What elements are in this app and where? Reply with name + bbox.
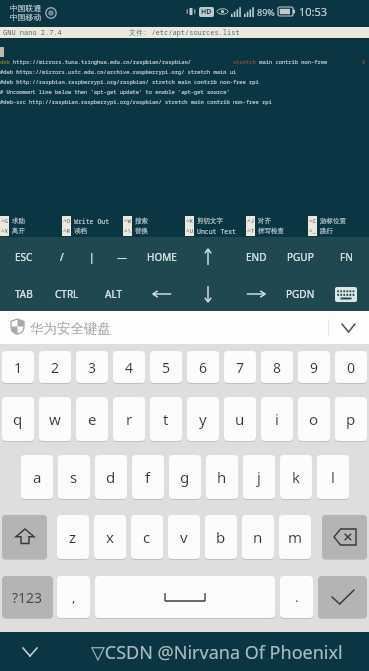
button[interactable]: 1 <box>2 351 34 383</box>
button[interactable]: b <box>205 515 237 559</box>
button[interactable]: l <box>317 455 349 499</box>
button[interactable]: i <box>261 397 293 441</box>
staticText: GNU nano 2.7.4 <box>3 28 62 38</box>
button[interactable]: ESC <box>2 244 46 270</box>
staticText: 2 <box>51 358 60 377</box>
staticText: ^C <box>309 217 317 225</box>
button[interactable]: END <box>234 244 278 270</box>
button[interactable]: ?123 <box>2 576 53 618</box>
button[interactable]: / <box>40 244 84 270</box>
button[interactable]: Collapse keyboard <box>334 316 362 340</box>
staticText: #deb https://mirrors.ustc.edu.cn/archive… <box>0 68 237 75</box>
button[interactable]: Enter <box>318 576 367 618</box>
staticText: 8 <box>273 358 282 377</box>
button[interactable]: ALT <box>91 281 135 307</box>
staticText: 离开 <box>12 227 25 235</box>
button[interactable]: 5 <box>150 351 182 383</box>
button[interactable]: v <box>168 515 200 559</box>
button[interactable]: ^O <box>62 216 124 237</box>
staticText: Uncut Text <box>197 227 237 236</box>
staticText: s <box>70 467 78 487</box>
staticText: 跳行 <box>320 227 333 235</box>
staticText: #deb-src http://raspbian.raspberrypi.org… <box>0 98 272 105</box>
staticText: t <box>163 409 169 429</box>
staticText: q <box>13 409 23 429</box>
staticText: 10:53 <box>299 4 328 19</box>
button[interactable]: Arrow down <box>186 281 230 307</box>
staticText: 6 <box>199 358 208 377</box>
button[interactable]: — <box>100 244 144 270</box>
staticText: ^K <box>186 217 194 225</box>
button[interactable]: q <box>2 397 34 441</box>
staticText: Write Out <box>74 217 110 226</box>
staticText: p <box>346 409 356 429</box>
button[interactable]: ^C <box>308 216 369 237</box>
button[interactable]: s <box>58 455 90 499</box>
button[interactable]: Hide keyboard <box>14 640 46 664</box>
button[interactable]: x <box>94 515 126 559</box>
button[interactable]: 2 <box>39 351 71 383</box>
button[interactable]: Shift <box>2 515 47 559</box>
button[interactable]: c <box>131 515 163 559</box>
button[interactable]: j <box>243 455 275 499</box>
button[interactable]: k <box>280 455 312 499</box>
button[interactable]: 7 <box>224 351 256 383</box>
button[interactable]: Backspace <box>322 515 367 559</box>
button[interactable]: Arrow right <box>234 281 278 307</box>
button[interactable]: ^K <box>185 216 247 237</box>
staticText: $ <box>362 58 366 65</box>
button[interactable]: 0 <box>335 351 367 383</box>
button[interactable]: PGDN <box>278 281 322 307</box>
button[interactable]: . <box>280 576 313 618</box>
button[interactable]: g <box>169 455 201 499</box>
button[interactable]: ^W <box>123 216 185 237</box>
staticText: | <box>89 250 95 264</box>
button[interactable]: z <box>57 515 89 559</box>
staticText: d <box>106 467 116 487</box>
button[interactable]: a <box>21 455 53 499</box>
button[interactable]: t <box>150 397 182 441</box>
button[interactable]: PGUP <box>278 244 322 270</box>
staticText: / <box>60 250 64 264</box>
button[interactable]: m <box>279 515 311 559</box>
button[interactable]: 9 <box>298 351 330 383</box>
button[interactable]: Arrow up <box>186 244 230 270</box>
button[interactable]: HOME <box>140 244 184 270</box>
button[interactable]: 6 <box>187 351 219 383</box>
button[interactable]: n <box>242 515 274 559</box>
button[interactable]: | <box>70 244 114 270</box>
button[interactable]: Space <box>95 576 275 618</box>
button[interactable]: h <box>206 455 238 499</box>
staticText: 7 <box>236 358 245 377</box>
button[interactable]: o <box>298 397 330 441</box>
button[interactable]: 8 <box>261 351 293 383</box>
button[interactable]: CTRL <box>45 281 89 307</box>
button[interactable]: e <box>76 397 108 441</box>
staticText: 搜索 <box>135 217 148 225</box>
staticText: HD <box>201 7 212 17</box>
staticText: k <box>292 467 301 487</box>
staticText: HOME <box>147 250 177 264</box>
staticText: r <box>126 409 133 429</box>
button[interactable]: 4 <box>113 351 145 383</box>
staticText: 5 <box>162 358 171 377</box>
button[interactable]: TAB <box>2 281 46 307</box>
button[interactable]: y <box>187 397 219 441</box>
button[interactable]: FN <box>324 244 368 270</box>
button[interactable]: p <box>335 397 367 441</box>
staticText: 0 <box>347 358 356 377</box>
button[interactable]: ^J <box>246 216 308 237</box>
staticText: 文件: /etc/apt/sources.list <box>129 28 240 38</box>
staticText: o <box>309 409 319 429</box>
button[interactable]: w <box>39 397 71 441</box>
button[interactable]: d <box>95 455 127 499</box>
button[interactable]: Hide keyboard <box>324 281 368 307</box>
button[interactable]: ^G <box>0 216 62 237</box>
button[interactable]: Arrow left <box>140 281 184 307</box>
button[interactable]: 3 <box>76 351 108 383</box>
staticText: ^R <box>63 227 71 235</box>
button[interactable]: , <box>57 576 90 618</box>
button[interactable]: f <box>132 455 164 499</box>
button[interactable]: u <box>224 397 256 441</box>
button[interactable]: r <box>113 397 145 441</box>
